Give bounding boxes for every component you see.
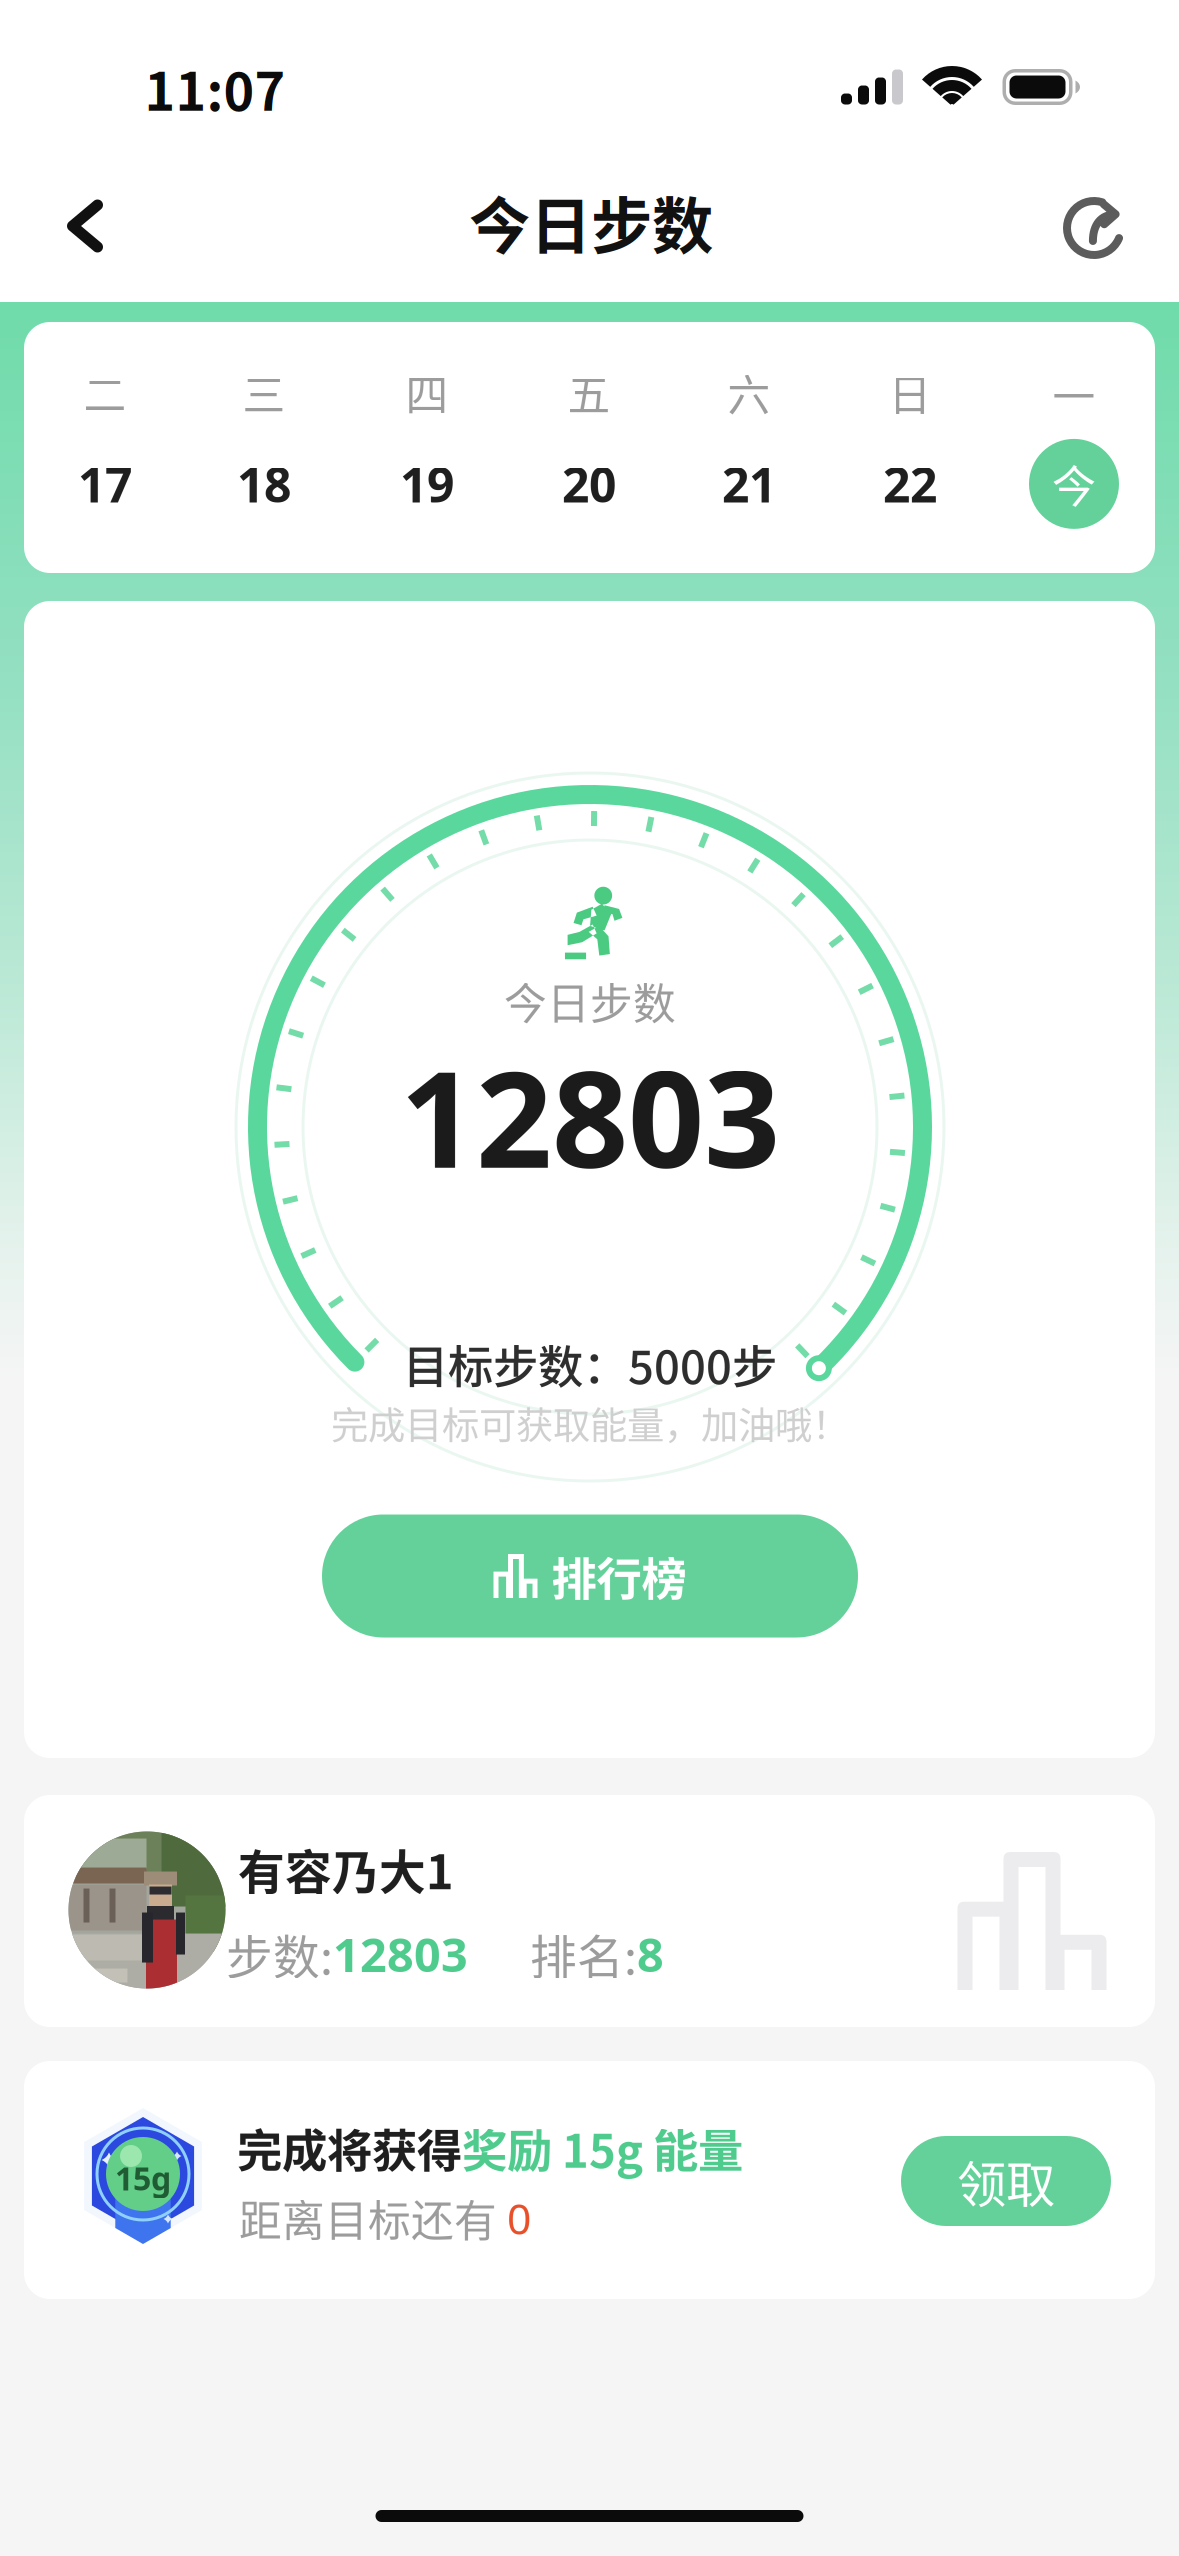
staticText: 今 <box>1052 452 1096 516</box>
staticText: 领取 <box>957 2145 1055 2217</box>
staticText: 12803 <box>400 1025 780 1207</box>
staticText: 排名: <box>530 1920 637 1988</box>
staticText: 四 <box>405 361 448 423</box>
staticText: 21 <box>722 451 776 517</box>
staticText: 排行榜 <box>551 1543 686 1609</box>
staticText: 三 <box>242 361 285 423</box>
staticText: 今日步数 <box>469 178 713 266</box>
button[interactable]: 六 <box>679 349 819 529</box>
staticText: 一 <box>1052 363 1095 425</box>
staticText: 有容乃大1 <box>238 1835 454 1903</box>
staticText: 8 <box>637 1922 664 1986</box>
staticText: 0 <box>507 2189 531 2247</box>
staticText: 19 <box>400 451 454 517</box>
staticText: 20 <box>562 451 616 517</box>
staticText: 五 <box>567 361 610 423</box>
staticText: 日 <box>888 361 931 423</box>
button[interactable]: 有容乃大1 <box>24 1795 1155 2027</box>
staticText: 15g <box>115 2156 171 2200</box>
staticText: 完成目标可获取能量，加油哦！ <box>331 1396 849 1450</box>
staticText: 目标步数：5000步 <box>403 1331 777 1397</box>
staticText: 步数: <box>226 1920 333 1988</box>
staticText: 六 <box>727 361 770 423</box>
staticText: 11:07 <box>144 50 285 126</box>
button[interactable]: 五 <box>519 349 659 529</box>
button[interactable]: 排行榜 <box>322 1514 858 1637</box>
staticText: 距离目标还有 <box>239 2187 507 2249</box>
button[interactable]: 日 <box>840 349 980 529</box>
button[interactable]: 三 <box>194 349 334 529</box>
staticText: 17 <box>78 451 132 517</box>
staticText: 奖励 15g 能量 <box>462 2115 743 2181</box>
staticText: 18 <box>237 451 291 517</box>
button[interactable]: Back <box>32 169 137 283</box>
button[interactable]: 一 <box>1004 356 1144 536</box>
staticText: 12803 <box>333 1922 468 1986</box>
staticText: 完成将获得 <box>237 2115 462 2181</box>
button[interactable]: Share <box>1034 168 1154 288</box>
button[interactable]: 领取 <box>901 2136 1111 2226</box>
staticText: 22 <box>883 451 937 517</box>
staticText: 二 <box>83 361 126 423</box>
button[interactable]: 二 <box>35 349 175 529</box>
staticText: 今日步数 <box>504 970 676 1032</box>
button[interactable]: 四 <box>357 349 497 529</box>
